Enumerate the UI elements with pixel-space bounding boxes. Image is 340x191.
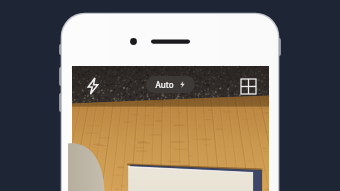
button[interactable]: Flash [80, 73, 106, 99]
button[interactable]: Grid [235, 73, 261, 99]
button[interactable]: Auto [146, 76, 195, 93]
staticText: Auto [155, 79, 174, 90]
